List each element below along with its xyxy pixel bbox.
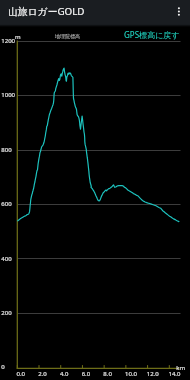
staticText: 山旅ロガーGOLD [8,5,85,18]
staticText: 地理院標高 [55,33,80,39]
button[interactable]: More options [170,0,190,20]
staticText: GPS標高に戻す [124,29,180,40]
button[interactable]: GPS標高に戻す [124,29,180,40]
